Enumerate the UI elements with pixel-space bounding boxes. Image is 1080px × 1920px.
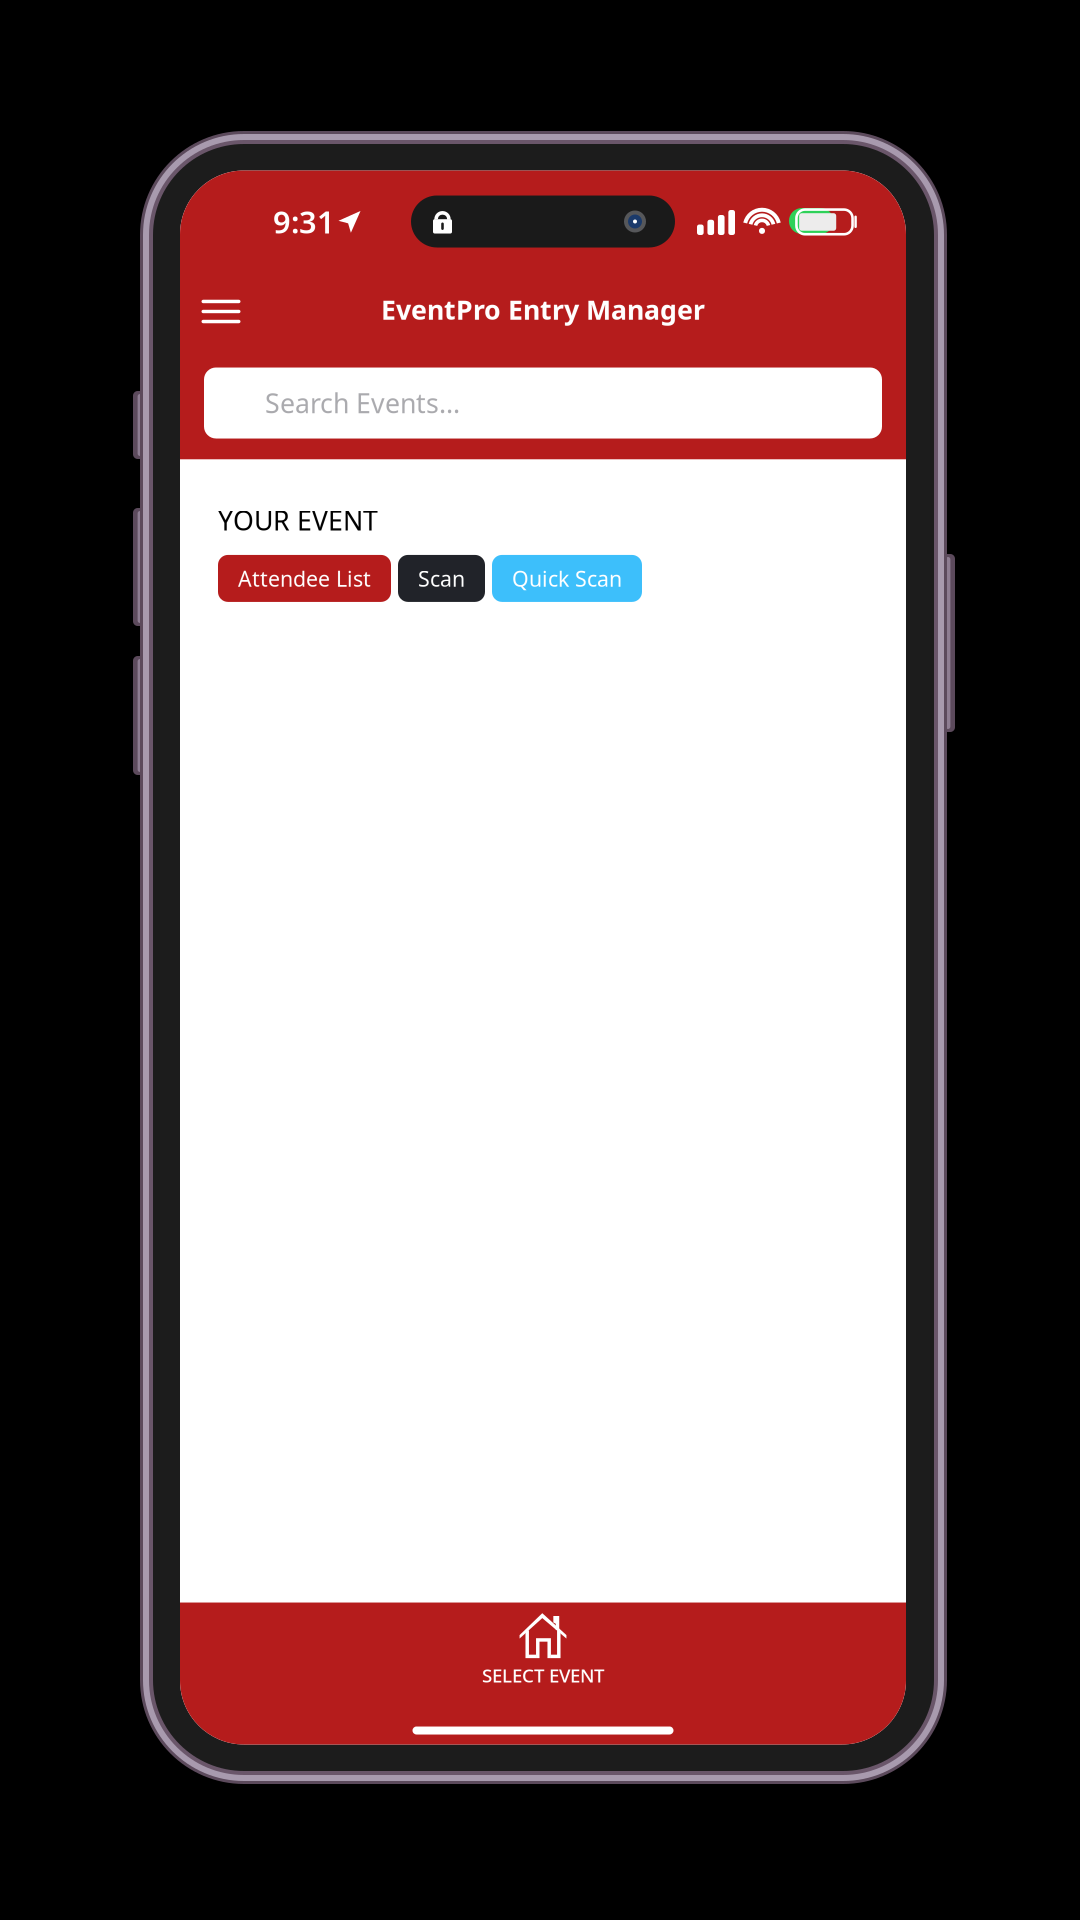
staticText: EventPro Entry Manager bbox=[381, 292, 705, 327]
staticText: YOUR EVENT bbox=[218, 502, 378, 538]
staticText: Scan bbox=[418, 564, 465, 592]
button[interactable]: Scan bbox=[398, 555, 485, 602]
staticText: Attendee List bbox=[238, 564, 371, 592]
staticText: SELECT EVENT bbox=[482, 1663, 604, 1688]
button[interactable]: Search Events bbox=[204, 367, 882, 438]
button[interactable]: SELECT EVENT bbox=[180, 1602, 906, 1696]
button[interactable]: Attendee List bbox=[218, 555, 391, 602]
staticText: Search Events... bbox=[265, 385, 460, 421]
button[interactable]: Menu bbox=[190, 282, 252, 340]
staticText: 9:31 bbox=[273, 201, 335, 242]
button[interactable]: Quick Scan bbox=[492, 555, 642, 602]
staticText: Quick Scan bbox=[512, 564, 622, 592]
